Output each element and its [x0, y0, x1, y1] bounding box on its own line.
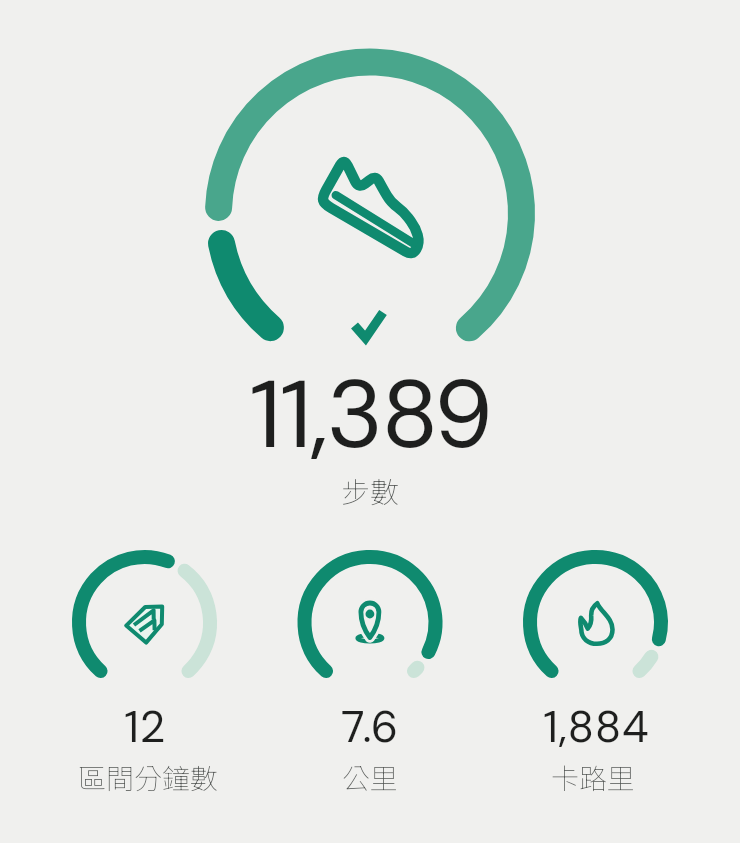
button[interactable]: [205, 48, 535, 348]
staticText: 步數: [341, 469, 400, 511]
button[interactable]: [515, 545, 695, 790]
button[interactable]: [45, 545, 225, 790]
staticText: 11,389: [249, 353, 492, 473]
staticText: 卡路里: [551, 757, 636, 798]
staticText: 公里: [342, 757, 399, 798]
button[interactable]: [280, 545, 460, 790]
staticText: 1,884: [543, 698, 650, 755]
staticText: 區間分鐘數: [78, 757, 219, 798]
staticText: 7.6: [341, 698, 399, 755]
staticText: 12: [124, 698, 166, 755]
